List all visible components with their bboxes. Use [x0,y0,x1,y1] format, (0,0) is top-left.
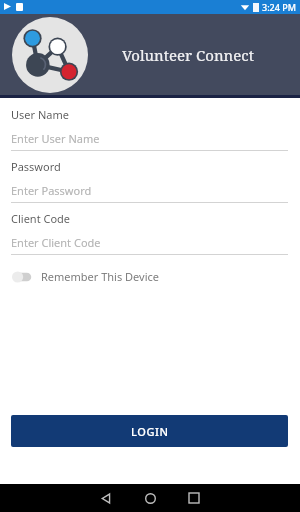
staticText: Volunteer Connect [122,45,254,65]
button[interactable]: User Name [0,107,300,151]
staticText: Remember This Device [41,269,159,284]
button[interactable]: LOGIN [11,415,288,447]
staticText: User Name [11,107,69,122]
button[interactable]: Recent apps [172,484,216,512]
button[interactable]: Back [84,484,128,512]
button[interactable]: Client Code [0,211,300,255]
staticText: Enter User Name [11,131,100,146]
staticText: 3:24 PM [262,1,296,13]
staticText: Client Code [11,211,71,226]
button[interactable]: Remember This Device [0,263,300,290]
staticText: Enter Password [11,183,92,198]
staticText: LOGIN [131,424,169,439]
button[interactable]: Home [128,484,172,512]
staticText: Enter Client Code [11,235,101,250]
button[interactable]: Password [0,159,300,203]
staticText: Password [11,159,61,174]
